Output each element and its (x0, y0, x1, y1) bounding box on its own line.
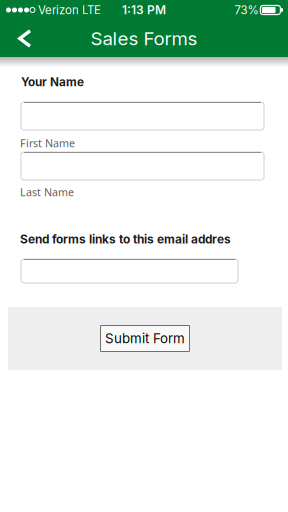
staticText: Submit Form (105, 330, 185, 346)
button[interactable]: Back (0, 20, 50, 57)
staticText: Verizon (38, 3, 79, 17)
staticText: 1:13 PM (122, 3, 166, 17)
staticText: LTE (82, 3, 101, 17)
staticText: Send forms links to this email addres (20, 232, 231, 246)
staticText: First Name (20, 136, 75, 150)
staticText: 73% (234, 3, 258, 17)
staticText: Your Name (21, 75, 84, 89)
button[interactable]: Submit Form (100, 325, 189, 351)
staticText: Last Name (20, 185, 74, 199)
staticText: Sales Forms (90, 27, 197, 50)
